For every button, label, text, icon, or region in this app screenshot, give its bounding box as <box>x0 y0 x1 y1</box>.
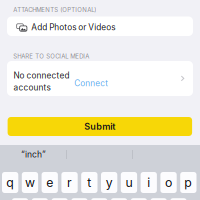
staticText: e <box>46 175 53 190</box>
staticText: No connected <box>13 70 69 80</box>
button[interactable]: k <box>150 198 167 200</box>
button[interactable]: i <box>141 172 157 193</box>
button[interactable]: Submit <box>8 117 192 136</box>
staticText: r <box>67 175 72 190</box>
button[interactable]: a <box>12 198 28 200</box>
button[interactable]: h <box>111 198 127 200</box>
button[interactable]: q <box>2 172 18 193</box>
staticText: Add Photos or Videos <box>31 22 115 32</box>
button[interactable]: r <box>61 172 78 193</box>
button[interactable]: w <box>22 172 38 193</box>
button[interactable]: g <box>91 198 107 200</box>
button[interactable]: e <box>42 172 58 193</box>
button[interactable]: d <box>51 198 68 200</box>
button[interactable]: j <box>131 198 147 200</box>
staticText: SHARE TO SOCIAL MEDIA <box>13 53 89 60</box>
staticText: ATTACHMENTS (OPTIONAL) <box>13 6 96 13</box>
staticText: Submit <box>84 121 115 132</box>
staticText: “inch” <box>21 149 46 160</box>
button[interactable]: l <box>170 198 187 200</box>
staticText: q <box>6 175 14 190</box>
staticText: Connect <box>74 78 108 88</box>
button[interactable]: p <box>180 172 196 193</box>
staticText: y <box>106 175 113 190</box>
button[interactable]: Add Photos or Videos <box>7 16 193 36</box>
staticText: accounts <box>13 82 50 92</box>
button[interactable]: u <box>121 172 137 193</box>
staticText: w <box>25 175 35 190</box>
staticText: t <box>87 175 91 190</box>
staticText: i <box>147 175 150 190</box>
button[interactable]: o <box>160 172 177 193</box>
button[interactable]: No connected <box>7 61 193 96</box>
button[interactable]: y <box>101 172 117 193</box>
staticText: o <box>165 175 172 190</box>
button[interactable]: s <box>32 198 48 200</box>
staticText: u <box>125 175 132 190</box>
staticText: p <box>184 175 192 190</box>
button[interactable]: t <box>81 172 97 193</box>
button[interactable]: f <box>71 198 88 200</box>
